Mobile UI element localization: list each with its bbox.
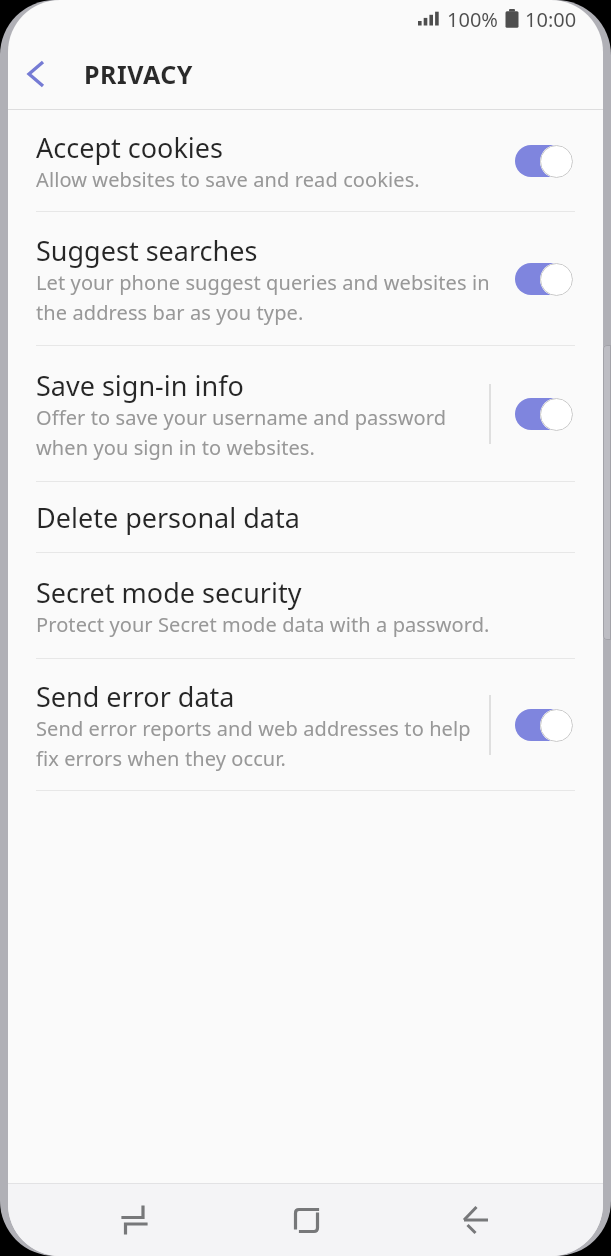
button[interactable]: Send error data <box>8 659 603 790</box>
button[interactable]: Secret mode security <box>8 553 603 658</box>
button[interactable] <box>8 46 64 102</box>
staticText: Offer to save your username and password… <box>36 404 447 461</box>
button[interactable]: Delete personal data <box>8 482 603 552</box>
staticText: Send error data <box>36 678 235 715</box>
staticText: Save sign-in info <box>36 367 244 404</box>
button[interactable] <box>515 397 573 431</box>
staticText: Accept cookies <box>36 129 223 166</box>
staticText: Suggest searches <box>36 232 258 269</box>
staticText: 10:00 <box>525 6 577 33</box>
button[interactable] <box>221 1184 391 1256</box>
button[interactable] <box>50 1184 221 1256</box>
staticText: Delete personal data <box>36 499 300 536</box>
button[interactable]: Suggest searches <box>8 212 603 345</box>
staticText: Send error reports and web addresses to … <box>36 715 471 772</box>
button[interactable]: Accept cookies <box>8 110 603 211</box>
button[interactable] <box>515 262 573 296</box>
button[interactable] <box>391 1184 561 1256</box>
button[interactable] <box>515 144 573 178</box>
staticText: PRIVACY <box>84 57 193 91</box>
button[interactable]: Save sign-in info <box>8 346 603 481</box>
staticText: Let your phone suggest queries and websi… <box>36 269 490 326</box>
staticText: Allow websites to save and read cookies. <box>36 166 420 193</box>
staticText: Secret mode security <box>36 574 302 611</box>
staticText: 100% <box>447 6 498 33</box>
button[interactable] <box>515 708 573 742</box>
staticText: Protect your Secret mode data with a pas… <box>36 611 490 638</box>
